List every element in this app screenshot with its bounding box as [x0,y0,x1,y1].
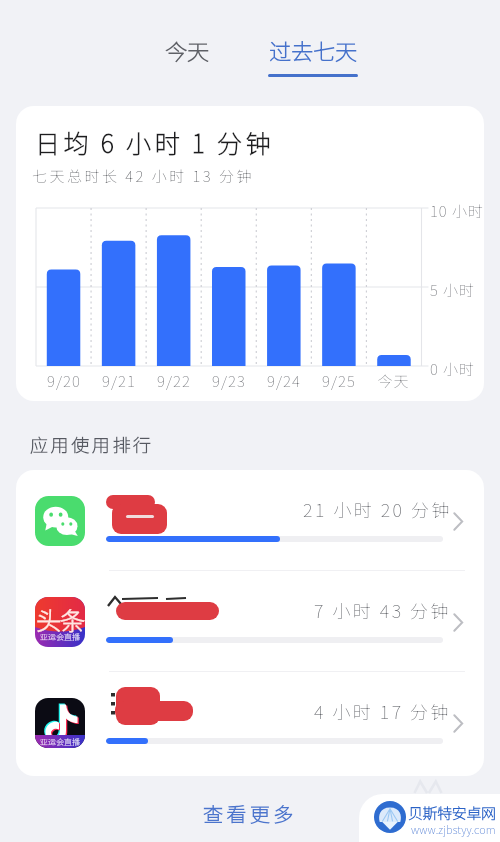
staticText: 七天总时长 42 小时 13 分钟 [32,165,254,187]
staticText: 查看更多 [203,799,297,828]
staticText: 头条 [36,601,85,637]
staticText: 过去七天 [269,34,358,66]
other: Details [453,512,464,531]
other: Details [453,613,464,632]
staticText: 7 小时 43 分钟 [314,597,452,623]
staticText: 9/20 [47,370,81,392]
staticText: 亚运会直播 [40,736,80,748]
staticText: 0 小时 [430,358,476,380]
button[interactable]: 21 小时 20 分钟 [16,470,484,571]
staticText: 亚运会直播 [40,631,80,643]
staticText: 今天 [377,370,410,392]
staticText: 9/23 [212,370,246,392]
staticText: 5 小时 [430,279,476,301]
staticText: 日均 6 小时 1 分钟 [35,124,274,160]
button[interactable]: 查看更多 [0,799,500,837]
staticText: 9/25 [322,370,356,392]
staticText: 9/21 [102,370,136,392]
staticText: 9/22 [157,370,191,392]
button[interactable]: 过去七天 [268,22,358,77]
staticText: 9/24 [267,370,301,392]
staticText: 今天 [165,34,210,66]
button[interactable]: 亚运会直播 [16,672,484,773]
staticText: 10 小时 [430,200,484,222]
other: Details [453,714,464,733]
staticText: 4 小时 17 分钟 [314,698,452,724]
staticText: 21 小时 20 分钟 [303,496,452,522]
staticText: www.zjbstyy.com [411,821,496,837]
button[interactable]: 今天 [145,22,229,74]
staticText: 应用使用排行 [30,431,154,457]
button[interactable]: 头条 [16,571,484,672]
staticText: 贝斯特安卓网 [408,802,496,824]
